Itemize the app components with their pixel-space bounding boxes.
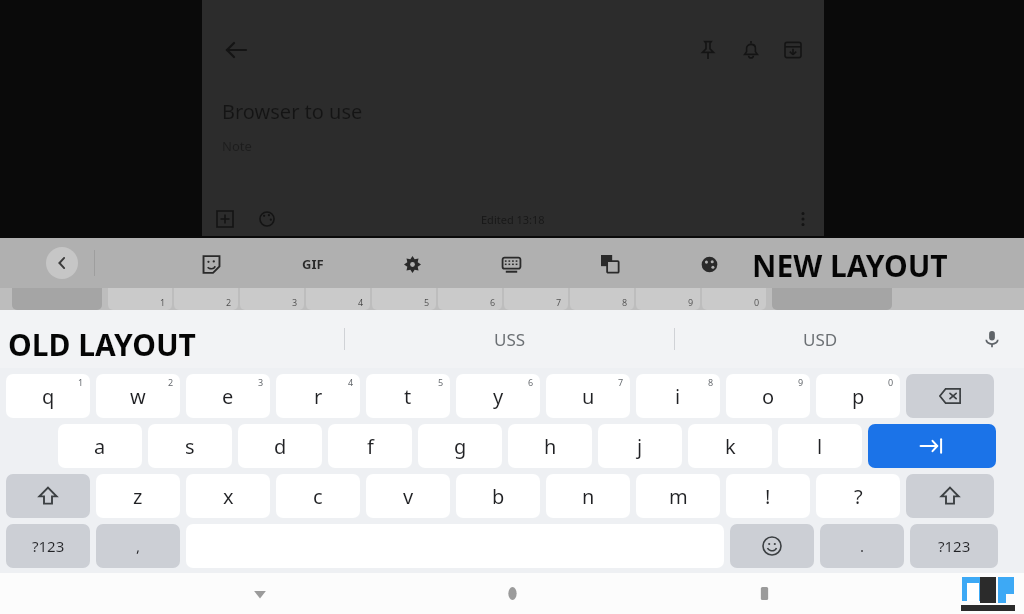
button[interactable]: r xyxy=(276,374,360,418)
button[interactable]: Shift xyxy=(6,474,90,518)
staticText: u xyxy=(582,383,595,410)
button[interactable]: x xyxy=(186,474,270,518)
button[interactable]: d xyxy=(238,424,322,468)
staticText: ?123 xyxy=(938,536,971,556)
staticText: 6 xyxy=(528,376,534,388)
button[interactable]: ? xyxy=(816,474,900,518)
button[interactable]: ! xyxy=(726,474,810,518)
button[interactable]: Back xyxy=(238,573,282,614)
button[interactable]: v xyxy=(366,474,450,518)
button[interactable]: 5 xyxy=(372,288,436,310)
button[interactable]: m xyxy=(636,474,720,518)
button[interactable]: Recents xyxy=(742,573,786,614)
button[interactable]: . xyxy=(820,524,904,568)
staticText: 1 xyxy=(78,376,84,388)
staticText: USD xyxy=(803,328,838,351)
button[interactable]: Stickers xyxy=(194,247,228,281)
button[interactable]: 1 xyxy=(108,288,172,310)
button[interactable]: h xyxy=(508,424,592,468)
staticText: y xyxy=(493,383,504,410)
button[interactable]: ?123 xyxy=(6,524,90,568)
staticText: 3 xyxy=(292,296,298,308)
staticText: t xyxy=(404,383,412,410)
button[interactable]: Back xyxy=(46,247,78,279)
staticText: e xyxy=(222,383,234,410)
button[interactable]: e xyxy=(186,374,270,418)
button[interactable]: USS xyxy=(380,310,640,368)
button[interactable]: Reminder xyxy=(731,30,771,70)
staticText: ?123 xyxy=(32,536,65,556)
button[interactable]: 3 xyxy=(240,288,304,310)
staticText: 2 xyxy=(226,296,232,308)
button[interactable]: u xyxy=(546,374,630,418)
staticText: f xyxy=(367,433,374,460)
button[interactable]: 7 xyxy=(504,288,568,310)
button[interactable]: n xyxy=(546,474,630,518)
staticText: s xyxy=(185,433,195,460)
button[interactable]: 8 xyxy=(570,288,634,310)
button[interactable]: j xyxy=(598,424,682,468)
button[interactable]: Theme xyxy=(692,247,726,281)
button[interactable]: USD xyxy=(700,310,940,368)
button[interactable]: z xyxy=(96,474,180,518)
button[interactable]: 9 xyxy=(636,288,700,310)
staticText: b xyxy=(492,483,505,510)
button[interactable]: s xyxy=(148,424,232,468)
button[interactable]: b xyxy=(456,474,540,518)
button[interactable]: i xyxy=(636,374,720,418)
button[interactable]: Emoji xyxy=(730,524,814,568)
button[interactable]: Tab xyxy=(868,424,996,468)
button[interactable]: Voice input xyxy=(974,321,1010,357)
staticText: 1 xyxy=(160,296,166,308)
staticText: 8 xyxy=(708,376,714,388)
button[interactable]: y xyxy=(456,374,540,418)
staticText: z xyxy=(133,483,143,510)
button[interactable]: 2 xyxy=(174,288,238,310)
button[interactable]: Translate xyxy=(593,247,627,281)
button[interactable]: p xyxy=(816,374,900,418)
staticText: Edited 13:18 xyxy=(481,212,545,227)
button[interactable]: Settings xyxy=(395,247,429,281)
button[interactable]: , xyxy=(96,524,180,568)
button[interactable]: Colour xyxy=(252,204,282,234)
staticText: j xyxy=(637,433,643,460)
button[interactable]: 0 xyxy=(702,288,766,310)
button[interactable]: 6 xyxy=(438,288,502,310)
button[interactable]: ?123 xyxy=(910,524,998,568)
button[interactable]: Shift xyxy=(906,474,994,518)
button[interactable]: a xyxy=(58,424,142,468)
button[interactable]: Back xyxy=(216,30,256,70)
button[interactable]: t xyxy=(366,374,450,418)
button[interactable]: 4 xyxy=(306,288,370,310)
button[interactable]: f xyxy=(328,424,412,468)
button[interactable]: w xyxy=(96,374,180,418)
button[interactable]: Archive xyxy=(773,30,813,70)
staticText: 9 xyxy=(798,376,804,388)
button[interactable]: Home xyxy=(490,573,534,614)
staticText: c xyxy=(313,483,323,510)
button[interactable]: More options xyxy=(788,204,818,234)
button[interactable]: Backspace xyxy=(906,374,994,418)
button[interactable]: c xyxy=(276,474,360,518)
staticText: m xyxy=(669,483,688,510)
staticText: 0 xyxy=(888,376,894,388)
button[interactable]: l xyxy=(778,424,862,468)
staticText: w xyxy=(130,383,146,410)
button[interactable]: Keyboard mode xyxy=(494,247,528,281)
staticText: , xyxy=(136,536,141,556)
staticText: USS xyxy=(494,328,526,351)
staticText: 6 xyxy=(490,296,496,308)
button[interactable]: GIF xyxy=(293,247,333,281)
staticText: ? xyxy=(854,483,863,510)
button[interactable]: g xyxy=(418,424,502,468)
staticText: n xyxy=(582,483,595,510)
button[interactable]: k xyxy=(688,424,772,468)
button[interactable]: o xyxy=(726,374,810,418)
button[interactable]: Pin xyxy=(688,30,728,70)
button[interactable]: Add content xyxy=(210,204,240,234)
button[interactable]: q xyxy=(6,374,90,418)
staticText: x xyxy=(223,483,234,510)
